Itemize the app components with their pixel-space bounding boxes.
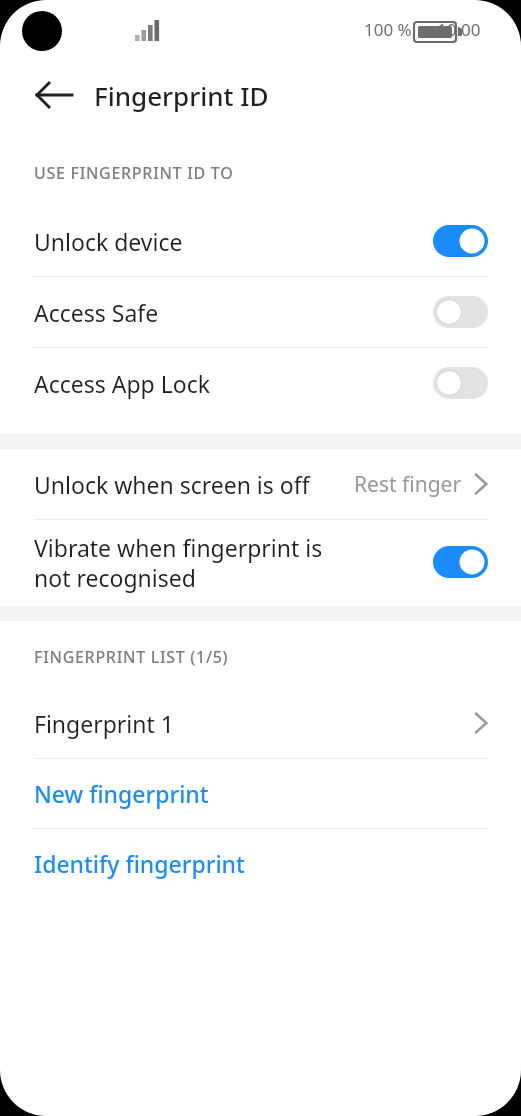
button[interactable]: Toggle on — [433, 225, 488, 257]
button[interactable]: Toggle off — [433, 367, 488, 399]
staticText: Vibrate when fingerprint is not recognis… — [34, 532, 354, 593]
button[interactable]: Unlock device — [0, 206, 521, 276]
button[interactable]: Toggle on — [433, 546, 488, 578]
button[interactable]: Identify fingerprint — [0, 829, 521, 898]
button[interactable]: Toggle off — [433, 296, 488, 328]
staticText: Access App Lock — [34, 368, 211, 399]
button[interactable]: Access App Lock — [0, 348, 521, 418]
button[interactable]: Fingerprint 1 — [0, 688, 521, 758]
staticText: Fingerprint 1 — [34, 708, 174, 739]
staticText: Unlock device — [34, 226, 183, 257]
staticText: USE FINGERPRINT ID TO — [34, 162, 234, 184]
button[interactable]: Access Safe — [0, 277, 521, 347]
staticText: Identify fingerprint — [34, 848, 245, 879]
staticText: Unlock when screen is off — [34, 469, 310, 500]
staticText: New fingerprint — [34, 778, 209, 809]
button[interactable]: Unlock when screen is off — [0, 449, 521, 519]
staticText: 10:00 — [437, 18, 481, 41]
button[interactable]: New fingerprint — [0, 759, 521, 828]
staticText: FINGERPRINT LIST (1/5) — [34, 646, 229, 668]
staticText: Fingerprint ID — [94, 78, 269, 113]
button[interactable]: Back — [26, 67, 82, 123]
staticText: Rest finger — [354, 470, 462, 499]
staticText: 100 % — [364, 18, 412, 41]
staticText: Access Safe — [34, 297, 159, 328]
